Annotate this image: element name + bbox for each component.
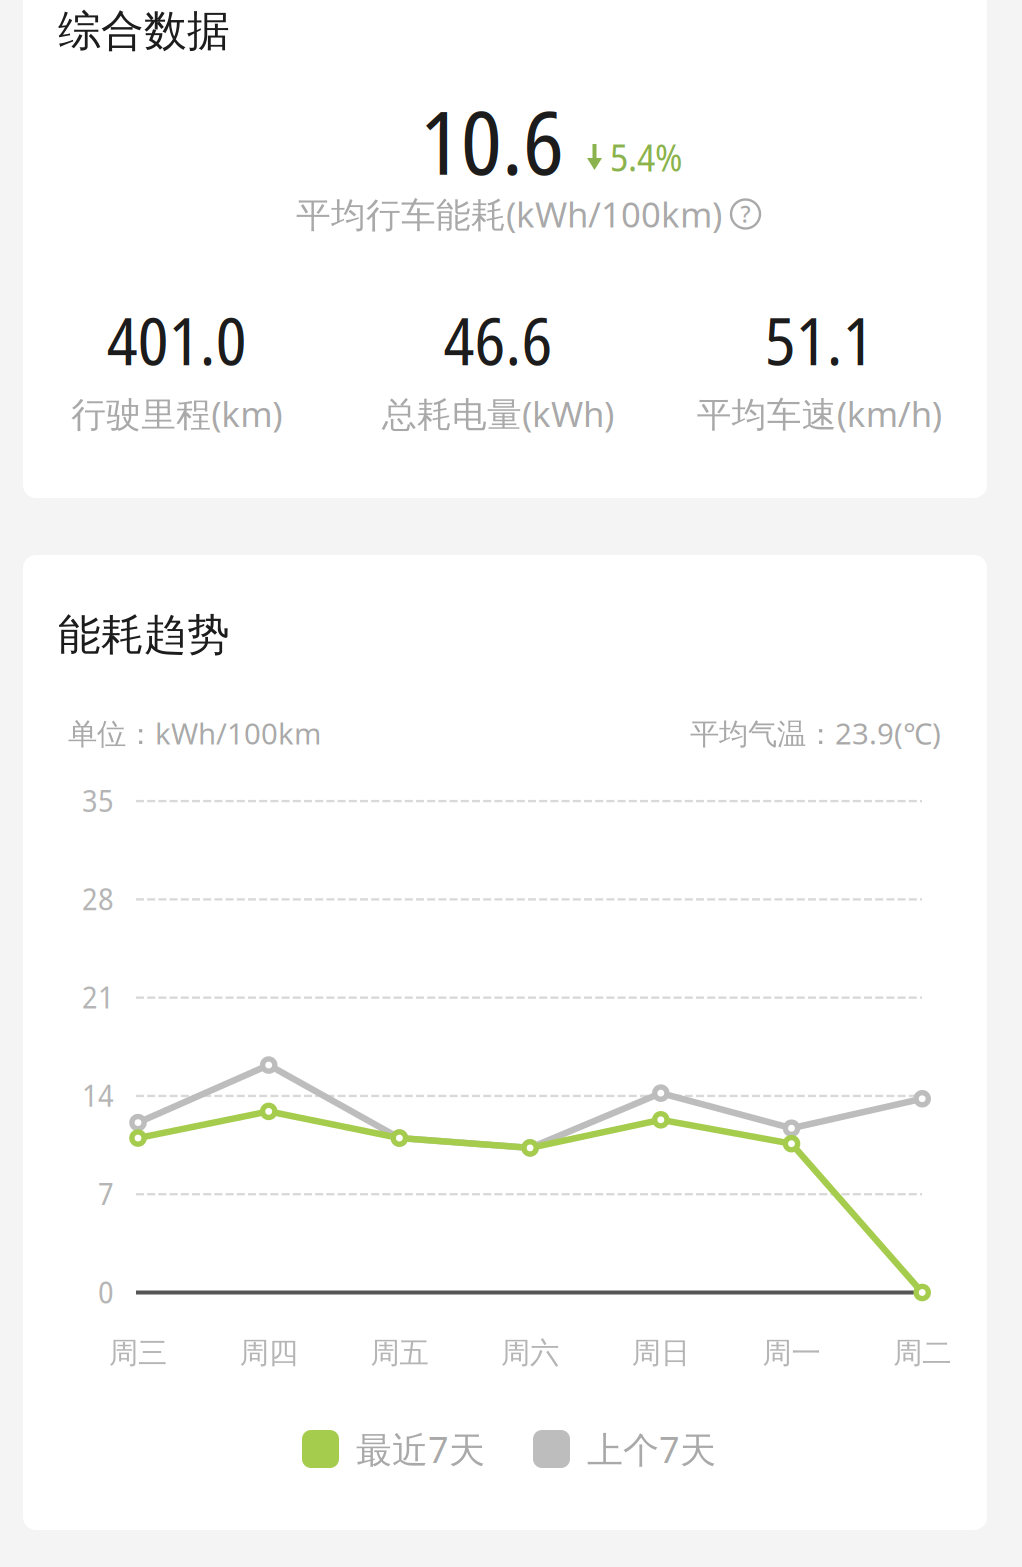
staticText: 周二 xyxy=(893,1335,951,1371)
button[interactable]: 关于平均行车能耗 xyxy=(731,199,760,228)
staticText: 21 xyxy=(82,976,114,1018)
staticText: 平均车速(km/h) xyxy=(697,390,942,436)
staticText: ? xyxy=(740,199,750,229)
staticText: 7 xyxy=(98,1172,114,1214)
staticText: 上个7天 xyxy=(587,1425,716,1473)
staticText: 周五 xyxy=(370,1335,428,1371)
staticText: 14 xyxy=(82,1074,114,1116)
staticText: 周三 xyxy=(109,1335,167,1371)
staticText: 平均气温：23.9(℃) xyxy=(690,713,941,752)
staticText: 5.4% xyxy=(610,132,682,182)
staticText: 周一 xyxy=(762,1335,820,1371)
button[interactable]: 最近7天 xyxy=(302,1425,485,1473)
button[interactable]: 上个7天 xyxy=(533,1425,716,1473)
staticText: 46.6 xyxy=(443,295,552,384)
staticText: 最近7天 xyxy=(356,1425,485,1473)
staticText: 总耗电量(kWh) xyxy=(382,390,614,436)
staticText: 单位：kWh/100km xyxy=(68,713,321,752)
staticText: 周六 xyxy=(501,1335,559,1371)
staticText: 周日 xyxy=(632,1335,690,1371)
staticText: 51.1 xyxy=(765,295,874,384)
staticText: 28 xyxy=(82,877,114,919)
staticText: 行驶里程(km) xyxy=(71,390,282,436)
staticText: 10.6 xyxy=(420,82,564,200)
staticText: 综合数据 xyxy=(58,5,230,57)
staticText: 平均行车能耗(kWh/100km) xyxy=(296,191,722,237)
staticText: 0 xyxy=(98,1271,114,1312)
staticText: 周四 xyxy=(240,1335,298,1371)
staticText: 401.0 xyxy=(107,295,247,384)
staticText: 35 xyxy=(82,779,114,821)
staticText: 能耗趋势 xyxy=(58,609,230,661)
